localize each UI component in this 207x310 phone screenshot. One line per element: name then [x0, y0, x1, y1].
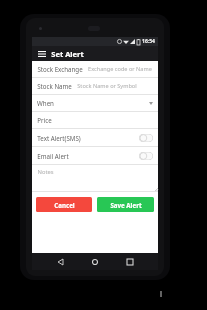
button[interactable]: Email Alert — [32, 147, 158, 165]
button[interactable]: Back — [53, 255, 67, 269]
staticText: Cancel — [54, 201, 75, 209]
button[interactable]: Recent apps — [123, 255, 137, 269]
button[interactable]: Text Alert(SMS) — [32, 129, 158, 147]
button[interactable]: Notes — [32, 165, 158, 192]
button[interactable]: When — [32, 95, 158, 112]
button[interactable]: Home — [88, 255, 102, 269]
button[interactable]: Save Alert — [97, 197, 154, 212]
staticText: Notes — [37, 168, 54, 176]
staticText: Stock Exchange — [37, 65, 83, 73]
button[interactable]: Price — [32, 112, 158, 129]
button[interactable]: Stock Exchange — [32, 61, 158, 78]
button[interactable]: Cancel — [36, 197, 92, 212]
button[interactable]: Stock Name — [32, 78, 158, 95]
staticText: Text Alert(SMS) — [37, 134, 81, 142]
staticText: 16:54 — [142, 38, 155, 45]
staticText: Exchange code or Name — [88, 65, 152, 73]
staticText: Stock Name — [37, 82, 72, 90]
staticText: Price — [37, 116, 52, 124]
button[interactable]: Open navigation menu — [36, 48, 47, 59]
staticText: Email Alert — [37, 152, 69, 160]
staticText: Save Alert — [110, 201, 142, 209]
staticText: Stock Name or Symbol — [77, 82, 137, 90]
staticText: Set Alert — [51, 49, 84, 59]
staticText: When — [37, 99, 54, 107]
